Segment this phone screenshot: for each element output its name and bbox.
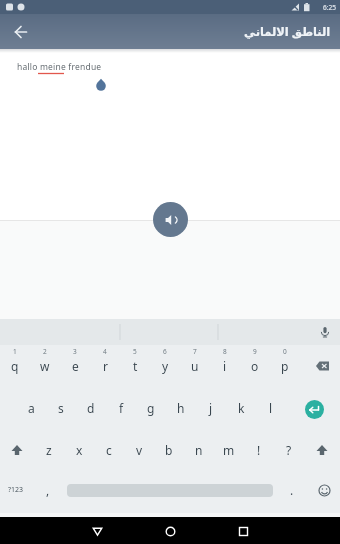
staticText: h (177, 400, 185, 416)
staticText: v (136, 442, 143, 458)
staticText: z (46, 442, 52, 458)
staticText: w (40, 358, 50, 374)
button[interactable] (3, 14, 38, 49)
button[interactable] (157, 518, 183, 544)
staticText: ?123 (8, 485, 24, 495)
button[interactable]: ! (244, 429, 274, 471)
button[interactable]: f (106, 387, 136, 429)
button[interactable]: r (90, 345, 120, 387)
button[interactable] (308, 469, 340, 511)
staticText: , (46, 482, 50, 498)
button[interactable]: t (120, 345, 150, 387)
staticText: e (72, 358, 79, 374)
button[interactable]: y (150, 345, 180, 387)
button[interactable]: l (256, 387, 286, 429)
button[interactable] (0, 429, 34, 471)
staticText: o (251, 358, 259, 374)
staticText: r (103, 358, 108, 374)
button[interactable] (230, 518, 256, 544)
staticText: a (28, 400, 35, 416)
staticText: q (11, 358, 19, 374)
button[interactable]: a (16, 387, 46, 429)
staticText: l (269, 400, 273, 416)
staticText: p (281, 358, 289, 374)
button[interactable]: , (32, 469, 64, 511)
staticText: y (162, 358, 169, 374)
button[interactable] (286, 387, 340, 429)
button[interactable]: e (60, 345, 90, 387)
staticText: 4 (103, 347, 107, 356)
staticText: 6 (163, 347, 167, 356)
staticText: b (165, 442, 173, 458)
button[interactable]: h (166, 387, 196, 429)
button[interactable]: b (154, 429, 184, 471)
button[interactable]: o (240, 345, 270, 387)
staticText: 1 (13, 347, 17, 356)
staticText: x (76, 442, 83, 458)
button[interactable] (300, 345, 340, 387)
button[interactable]: g (136, 387, 166, 429)
staticText: m (223, 442, 235, 458)
button[interactable]: p (270, 345, 300, 387)
button[interactable]: w (30, 345, 60, 387)
staticText: t (133, 358, 138, 374)
button[interactable]: m (214, 429, 244, 471)
staticText: ! (257, 442, 261, 458)
staticText: c (106, 442, 112, 458)
button[interactable]: j (196, 387, 226, 429)
staticText: f (119, 400, 124, 416)
staticText: 7 (193, 347, 197, 356)
staticText: 9 (253, 347, 257, 356)
button[interactable]: d (76, 387, 106, 429)
button[interactable] (304, 429, 340, 471)
staticText: 8 (223, 347, 227, 356)
staticText: الناطق الالماني (244, 24, 331, 40)
staticText: u (191, 358, 199, 374)
button[interactable]: ?123 (0, 469, 32, 511)
staticText: 3 (73, 347, 77, 356)
button[interactable]: i (210, 345, 240, 387)
button[interactable] (153, 202, 188, 237)
staticText: s (58, 400, 64, 416)
staticText: n (195, 442, 203, 458)
button[interactable]: k (226, 387, 256, 429)
button[interactable]: u (180, 345, 210, 387)
staticText: i (223, 358, 227, 374)
staticText: d (87, 400, 95, 416)
button[interactable]: z (34, 429, 64, 471)
staticText: 0 (283, 347, 287, 356)
button[interactable]: c (94, 429, 124, 471)
staticText: ? (286, 442, 292, 458)
button[interactable]: ? (274, 429, 304, 471)
button[interactable]: q (0, 345, 30, 387)
button[interactable]: . (276, 469, 308, 511)
staticText: 6:25 (323, 3, 336, 12)
staticText: hallo meine frendue (17, 61, 102, 73)
button[interactable]: v (124, 429, 154, 471)
staticText: 2 (43, 347, 47, 356)
staticText: k (238, 400, 245, 416)
staticText: g (147, 400, 155, 416)
button[interactable] (84, 518, 110, 544)
button[interactable] (64, 469, 276, 511)
staticText: j (209, 400, 213, 416)
button[interactable]: x (64, 429, 94, 471)
button[interactable]: s (46, 387, 76, 429)
staticText: . (290, 482, 294, 498)
staticText: 5 (133, 347, 137, 356)
button[interactable]: n (184, 429, 214, 471)
